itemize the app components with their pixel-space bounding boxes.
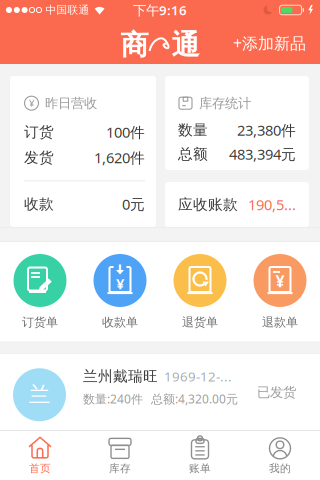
button[interactable]: 库存 <box>80 431 160 480</box>
staticText: 1,620件 <box>94 148 145 167</box>
button[interactable]: 账单 <box>160 431 240 480</box>
button[interactable]: 我的 <box>240 431 320 480</box>
button[interactable]: 退货单 <box>160 254 240 330</box>
staticText: 应收账款 <box>178 195 238 213</box>
staticText: 已发货 <box>257 384 296 401</box>
staticText: 0元 <box>122 194 145 214</box>
staticText: 总额 <box>178 145 208 163</box>
staticText: 收款 <box>24 195 54 213</box>
button[interactable]: ¥ <box>240 254 320 330</box>
staticText: ¥ <box>275 270 284 292</box>
staticText: 商 <box>120 28 148 62</box>
staticText: 190,5... <box>248 195 296 214</box>
staticText: 兰 <box>29 382 50 408</box>
staticText: 库存 <box>109 462 131 475</box>
staticText: 下午9:16 <box>133 1 187 19</box>
staticText: 库存统计 <box>199 95 251 111</box>
staticText: 兰州戴瑞旺 <box>83 367 158 385</box>
staticText: 首页 <box>29 462 51 475</box>
staticText: 发货 <box>24 149 54 167</box>
staticText: 100件 <box>106 122 145 142</box>
button[interactable]: +添加新品 <box>233 31 320 53</box>
staticText: ¥ <box>116 274 124 293</box>
button[interactable]: 订货单 <box>0 254 80 330</box>
staticText: 23,380件 <box>237 120 296 140</box>
staticText: 订货 <box>24 123 54 141</box>
button[interactable]: 首页 <box>0 431 80 480</box>
staticText: 订货单 <box>22 315 58 330</box>
staticText: 昨日营收 <box>45 95 97 111</box>
staticText: 退货单 <box>182 315 218 330</box>
staticText: 数量:240件 总额:4,320.00元 <box>83 391 238 407</box>
staticText: 账单 <box>189 462 211 475</box>
button[interactable]: ¥ <box>80 254 160 330</box>
staticText: 通 <box>171 28 199 62</box>
staticText: 收款单 <box>102 315 138 330</box>
staticText: 数量 <box>178 121 208 139</box>
button[interactable]: 应收账款 <box>165 182 309 227</box>
staticText: +添加新品 <box>233 32 306 54</box>
staticText: ¥ <box>29 97 34 109</box>
staticText: 483,394元 <box>229 144 296 164</box>
button[interactable]: 兰 <box>0 354 320 430</box>
staticText: 1969-12-... <box>164 367 232 385</box>
staticText: 我的 <box>269 462 291 475</box>
staticText: 退款单 <box>262 315 298 330</box>
staticText: 中国联通 <box>46 3 90 16</box>
